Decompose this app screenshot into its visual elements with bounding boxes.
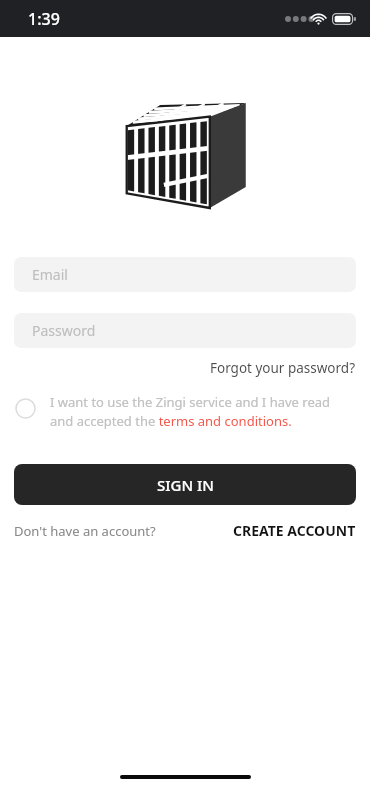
staticText: Password xyxy=(32,321,96,340)
button[interactable]: Email xyxy=(14,257,356,292)
button[interactable]: SIGN IN xyxy=(14,464,356,505)
button[interactable]: Don't have an account? xyxy=(14,519,156,543)
staticText: Forgot your password? xyxy=(210,359,356,377)
staticText: 1:39 xyxy=(28,8,60,30)
staticText: CREATE ACCOUNT xyxy=(233,521,356,540)
staticText: Don't have an account? xyxy=(14,522,156,540)
button[interactable]: Forgot your password? xyxy=(210,357,356,379)
button[interactable]: CREATE ACCOUNT xyxy=(233,518,356,543)
staticText: SIGN IN xyxy=(157,475,214,495)
button[interactable]: Password xyxy=(14,313,356,348)
staticText: Email xyxy=(32,265,68,284)
staticText: I want to use the Zingi service and I ha… xyxy=(50,393,356,430)
button[interactable]: I want to use the Zingi service and I ha… xyxy=(14,393,356,430)
